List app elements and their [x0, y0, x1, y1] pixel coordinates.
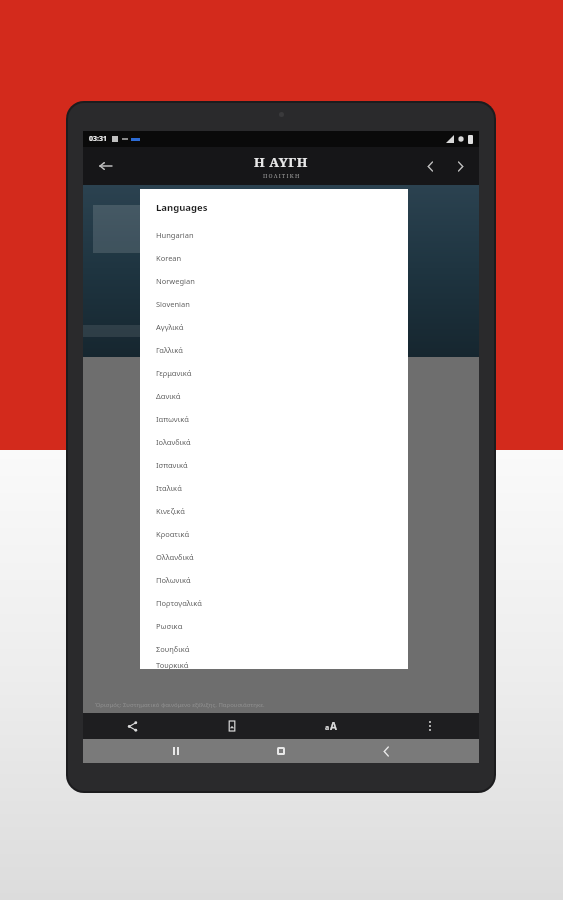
staticText: 03:31: [89, 134, 107, 144]
button[interactable]: Ισπανικά: [156, 453, 408, 476]
staticText: Τουρκικά: [156, 660, 189, 669]
button[interactable]: Κινεζικά: [156, 499, 408, 522]
button[interactable]: Recent apps: [164, 739, 188, 763]
staticText: a: [325, 723, 330, 733]
staticText: Πολωνικά: [156, 575, 191, 585]
button[interactable]: Δανικά: [156, 384, 408, 407]
button[interactable]: Korean: [156, 246, 408, 269]
button[interactable]: Back: [93, 153, 119, 179]
staticText: Korean: [156, 253, 182, 263]
button[interactable]: Share: [83, 713, 182, 739]
staticText: Σουηδικά: [156, 644, 190, 654]
staticText: Γερμανικά: [156, 368, 192, 378]
button[interactable]: More options: [380, 713, 479, 739]
staticText: Ιολανδικά: [156, 437, 191, 447]
staticText: Η ΑΥΓΗ: [254, 153, 309, 171]
button[interactable]: Τουρκικά: [156, 660, 408, 669]
button[interactable]: Next article: [449, 155, 471, 177]
button[interactable]: Ιαπωνικά: [156, 407, 408, 430]
button[interactable]: Αγγλικά: [156, 315, 408, 338]
staticText: Κινεζικά: [156, 506, 185, 516]
staticText: Languages: [156, 201, 208, 214]
staticText: Κροατικά: [156, 529, 190, 539]
button[interactable]: Slovenian: [156, 292, 408, 315]
staticText: Ιταλικά: [156, 483, 182, 493]
button[interactable]: Πορτογαλικά: [156, 591, 408, 614]
button[interactable]: Home: [269, 739, 293, 763]
staticText: Hungarian: [156, 230, 194, 240]
button[interactable]: Ιολανδικά: [156, 430, 408, 453]
button[interactable]: Σουηδικά: [156, 637, 408, 660]
staticText: Δανικά: [156, 391, 181, 401]
staticText: A: [330, 719, 337, 733]
button[interactable]: Previous article: [419, 155, 441, 177]
staticText: Αγγλικά: [156, 322, 184, 332]
button[interactable]: Bookmark: [182, 713, 281, 739]
staticText: Όρισμός: Συστηματικό φαινόμενο εξέλιξης.…: [95, 701, 265, 709]
staticText: Slovenian: [156, 299, 190, 309]
staticText: Πορτογαλικά: [156, 598, 202, 608]
staticText: Ρωσικα: [156, 621, 183, 631]
button[interactable]: Ιταλικά: [156, 476, 408, 499]
button[interactable]: Text size: [281, 713, 380, 739]
button[interactable]: Ρωσικα: [156, 614, 408, 637]
button[interactable]: Back: [374, 739, 398, 763]
button[interactable]: Γαλλικά: [156, 338, 408, 361]
staticText: ΠΟΛΙΤΙΚΗ: [263, 172, 301, 179]
staticText: Γαλλικά: [156, 345, 183, 355]
button[interactable]: Norwegian: [156, 269, 408, 292]
staticText: Ιαπωνικά: [156, 414, 189, 424]
button[interactable]: Κροατικά: [156, 522, 408, 545]
staticText: Norwegian: [156, 276, 195, 286]
staticText: Ολλανδικά: [156, 552, 194, 562]
button[interactable]: Ολλανδικά: [156, 545, 408, 568]
button[interactable]: Hungarian: [156, 223, 408, 246]
button[interactable]: Γερμανικά: [156, 361, 408, 384]
staticText: Ισπανικά: [156, 460, 188, 470]
button[interactable]: Πολωνικά: [156, 568, 408, 591]
